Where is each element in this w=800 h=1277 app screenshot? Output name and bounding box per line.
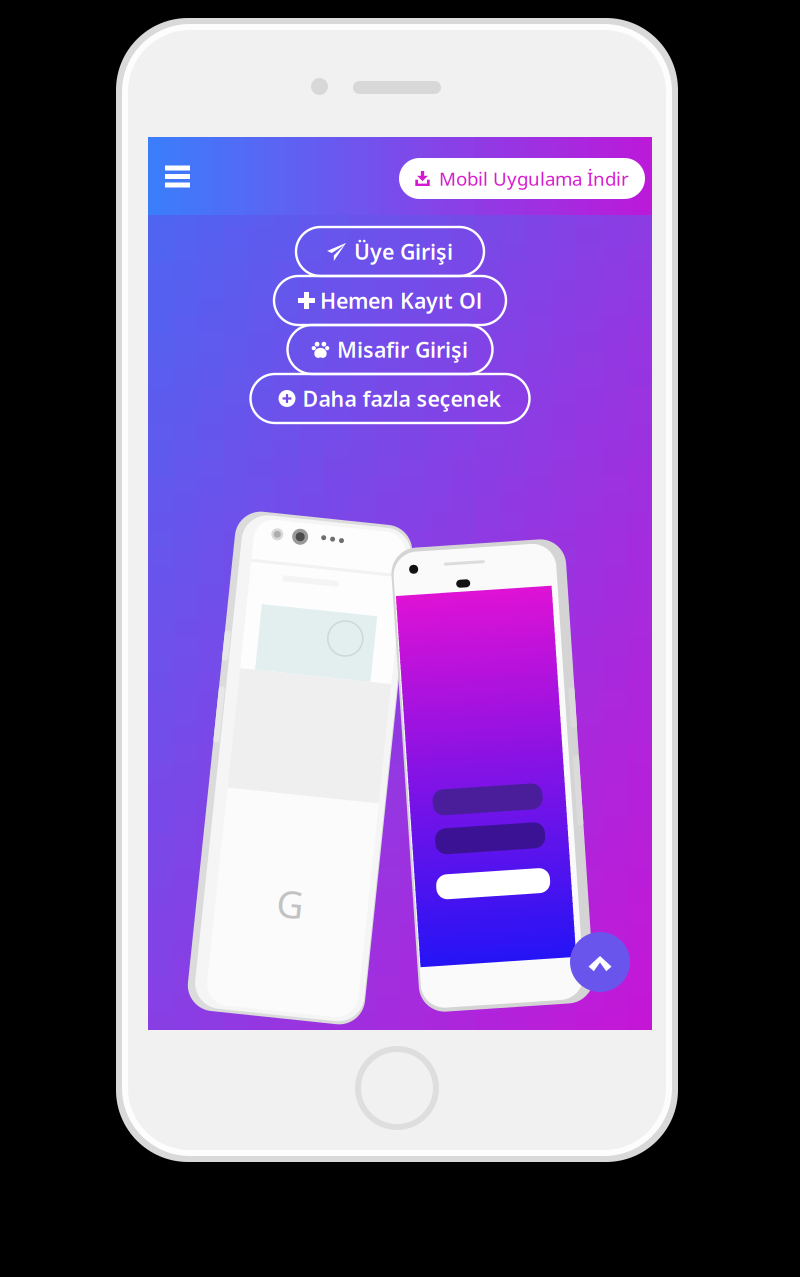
staticText: Daha fazla seçenek <box>302 384 501 413</box>
button[interactable]: Scroll to top <box>570 932 630 992</box>
button[interactable]: Menu <box>155 154 200 199</box>
button[interactable]: Daha fazla seçenek <box>250 374 529 423</box>
button[interactable]: Mobil Uygulama İndir <box>399 158 645 199</box>
button[interactable]: Misafir Girişi <box>287 325 492 374</box>
staticText: Misafir Girişi <box>337 335 468 364</box>
staticText: Hemen Kayıt Ol <box>320 286 482 315</box>
staticText: G <box>291 879 318 929</box>
button[interactable]: Üye Girişi <box>296 227 484 276</box>
button[interactable]: Hemen Kayıt Ol <box>274 276 506 325</box>
staticText: Mobil Uygulama İndir <box>439 166 629 191</box>
staticText: Üye Girişi <box>354 237 453 266</box>
